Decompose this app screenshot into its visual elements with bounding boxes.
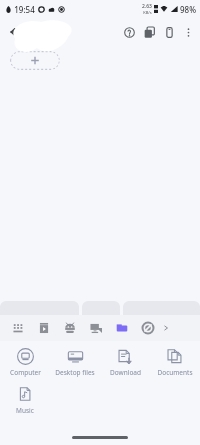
- button[interactable]: Music: [0, 384, 50, 417]
- staticText: Computer: [10, 368, 41, 377]
- button[interactable]: Documents: [150, 346, 200, 379]
- button[interactable]: Add: [10, 51, 60, 70]
- button[interactable]: Browser: [135, 315, 161, 341]
- button[interactable]: Device: [160, 23, 178, 41]
- staticText: Desktop files: [55, 368, 95, 377]
- button[interactable]: Computer: [0, 346, 50, 379]
- button[interactable]: Tabs: [140, 23, 158, 41]
- staticText: Music: [16, 406, 34, 415]
- button[interactable]: Download: [100, 346, 150, 379]
- button[interactable]: Screen mirror: [83, 315, 109, 341]
- button[interactable]: Desktop files: [50, 346, 100, 379]
- staticText: Documents: [157, 368, 193, 377]
- staticText: 19:54: [14, 4, 35, 15]
- staticText: KB/s: [143, 10, 152, 15]
- button[interactable]: Help: [120, 23, 138, 41]
- button[interactable]: Android: [57, 315, 83, 341]
- button[interactable]: Files: [109, 315, 135, 341]
- button[interactable]: Media: [31, 315, 57, 341]
- button[interactable]: Back: [5, 22, 25, 42]
- button[interactable]: More apps: [161, 323, 171, 333]
- staticText: 98%: [180, 4, 196, 15]
- button[interactable]: More options: [179, 23, 197, 41]
- button[interactable]: Apps: [5, 315, 31, 341]
- staticText: 2.63: [142, 3, 152, 10]
- staticText: Download: [110, 368, 141, 377]
